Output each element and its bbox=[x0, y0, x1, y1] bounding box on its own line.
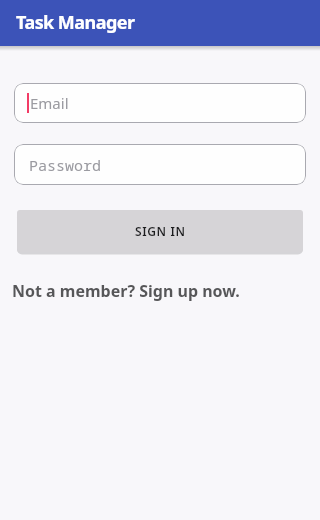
button[interactable]: SIGN IN bbox=[17, 210, 303, 252]
button[interactable]: Not a member? Sign up now. bbox=[12, 280, 240, 302]
staticText: SIGN IN bbox=[135, 223, 186, 239]
staticText: Password bbox=[29, 155, 102, 175]
staticText: Task Manager bbox=[16, 10, 135, 35]
button[interactable]: Email bbox=[14, 83, 306, 123]
staticText: Email bbox=[30, 93, 69, 113]
button[interactable]: Password bbox=[14, 144, 306, 185]
